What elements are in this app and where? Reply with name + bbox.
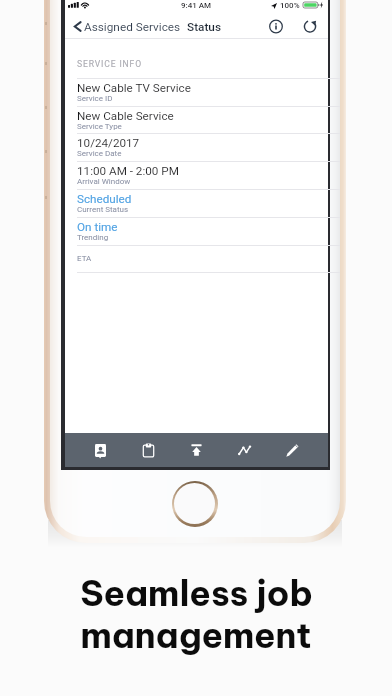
staticText: ETA: [77, 254, 92, 263]
button[interactable]: 10/24/2017: [65, 133, 328, 161]
button[interactable]: Edit: [268, 433, 316, 467]
button[interactable]: Jobs: [124, 433, 172, 467]
staticText: Assigned Services: [84, 20, 181, 34]
button[interactable]: Scheduled: [65, 189, 328, 217]
staticText: Service Date: [77, 149, 122, 158]
button[interactable]: Reports: [220, 433, 268, 467]
button[interactable]: ETA: [65, 245, 328, 273]
button[interactable]: New Cable TV Service: [65, 78, 328, 106]
staticText: New Cable Service: [77, 109, 174, 123]
staticText: 11:00 AM - 2:00 PM: [77, 164, 179, 178]
button[interactable]: 11:00 AM - 2:00 PM: [65, 161, 328, 189]
staticText: Seamless job: [80, 571, 313, 615]
button[interactable]: On time: [65, 217, 328, 245]
staticText: 100%: [280, 1, 300, 10]
staticText: 9:41 AM: [181, 1, 212, 10]
button[interactable]: Upload: [172, 433, 220, 467]
staticText: On time: [77, 220, 118, 234]
staticText: 10/24/2017: [77, 136, 140, 150]
staticText: SERVICE INFO: [77, 59, 142, 69]
button[interactable]: Info: [263, 14, 288, 39]
staticText: Trending: [77, 233, 109, 242]
staticText: Service Type: [77, 122, 122, 131]
staticText: Current Status: [77, 205, 129, 214]
staticText: Arrival Window: [77, 177, 131, 186]
button[interactable]: Refresh: [297, 14, 322, 39]
staticText: Service ID: [77, 94, 113, 103]
staticText: management: [80, 613, 312, 657]
staticText: New Cable TV Service: [77, 81, 191, 95]
button[interactable]: Contacts: [76, 433, 124, 467]
staticText: Status: [187, 20, 222, 34]
staticText: Scheduled: [77, 192, 132, 206]
button[interactable]: Assigned Services: [71, 14, 222, 39]
button[interactable]: New Cable Service: [65, 106, 328, 134]
